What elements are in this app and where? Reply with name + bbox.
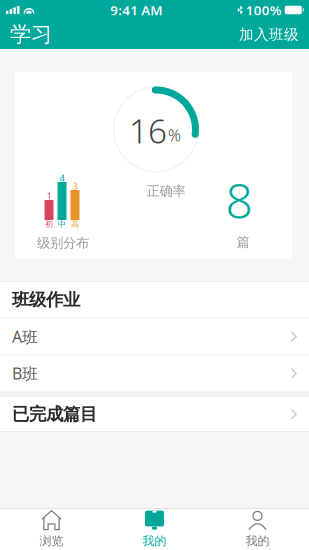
button[interactable]: 加入班级 [239,25,299,43]
staticText: 已完成篇目 [12,404,97,425]
staticText: 我的 [142,534,166,548]
button[interactable]: 我的 [103,509,206,550]
staticText: 初 [45,219,53,229]
staticText: 16 [129,108,167,153]
staticText: 学习 [10,21,52,48]
staticText: 浏览 [39,534,63,548]
staticText: 1 [46,190,51,202]
staticText: 正确率 [146,183,185,199]
button[interactable]: B班 [0,355,309,391]
button[interactable]: A班 [0,319,309,355]
staticText: B班 [12,363,38,384]
staticText: 加入班级 [239,25,299,43]
staticText: % [168,124,181,146]
staticText: 高 [71,219,79,229]
staticText: 中 [58,219,66,229]
staticText: 班级作业 [12,289,80,310]
staticText: 级别分布 [37,235,89,251]
button[interactable]: 我的 [206,509,309,550]
button[interactable]: 班级作业 [0,282,309,318]
staticText: 4 [59,172,64,184]
staticText: 篇 [236,234,249,250]
staticText: 100% [246,1,282,19]
staticText: 8 [225,167,252,233]
button[interactable]: 浏览 [0,509,103,550]
button[interactable]: 已完成篇目 [0,397,309,431]
staticText: A班 [12,326,38,347]
staticText: 3 [72,180,77,192]
staticText: 我的 [245,534,269,548]
staticText: 9:41 AM [110,1,162,19]
